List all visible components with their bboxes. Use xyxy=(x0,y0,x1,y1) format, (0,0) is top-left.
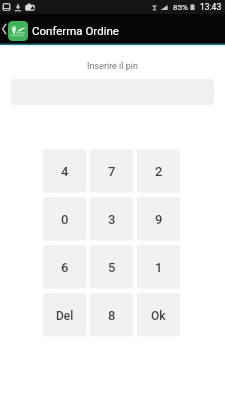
staticText: Del xyxy=(56,309,74,323)
button[interactable]: 2 xyxy=(137,149,180,192)
other: App icon xyxy=(8,21,28,41)
button[interactable]: 3 xyxy=(90,197,133,240)
button[interactable]: 9 xyxy=(137,197,180,240)
button[interactable]: Ok xyxy=(137,293,180,336)
staticText: 4 xyxy=(61,164,69,179)
button[interactable]: 1 xyxy=(137,245,180,288)
button[interactable]: 6 xyxy=(43,245,86,288)
staticText: 9 xyxy=(155,212,163,227)
staticText: Ok xyxy=(151,309,166,323)
button[interactable]: 7 xyxy=(90,149,133,192)
button[interactable]: 0 xyxy=(43,197,86,240)
staticText: 5 xyxy=(108,260,116,275)
button[interactable]: Back xyxy=(0,14,8,43)
staticText: 6 xyxy=(61,260,69,275)
staticText: Conferma Ordine xyxy=(32,24,119,37)
staticText: 3 xyxy=(108,212,116,227)
button[interactable]: 4 xyxy=(43,149,86,192)
staticText: Inserire il pin xyxy=(0,61,225,72)
button[interactable]: 8 xyxy=(90,293,133,336)
staticText: 7 xyxy=(108,164,116,179)
staticText: 1 xyxy=(155,260,163,275)
staticText: 8 xyxy=(108,308,116,323)
staticText: 0 xyxy=(61,212,69,227)
staticText: 85% xyxy=(173,3,188,12)
staticText: 2 xyxy=(155,164,163,179)
button[interactable]: Del xyxy=(43,293,86,336)
staticText: 13:43 xyxy=(200,2,222,12)
button[interactable]: 5 xyxy=(90,245,133,288)
